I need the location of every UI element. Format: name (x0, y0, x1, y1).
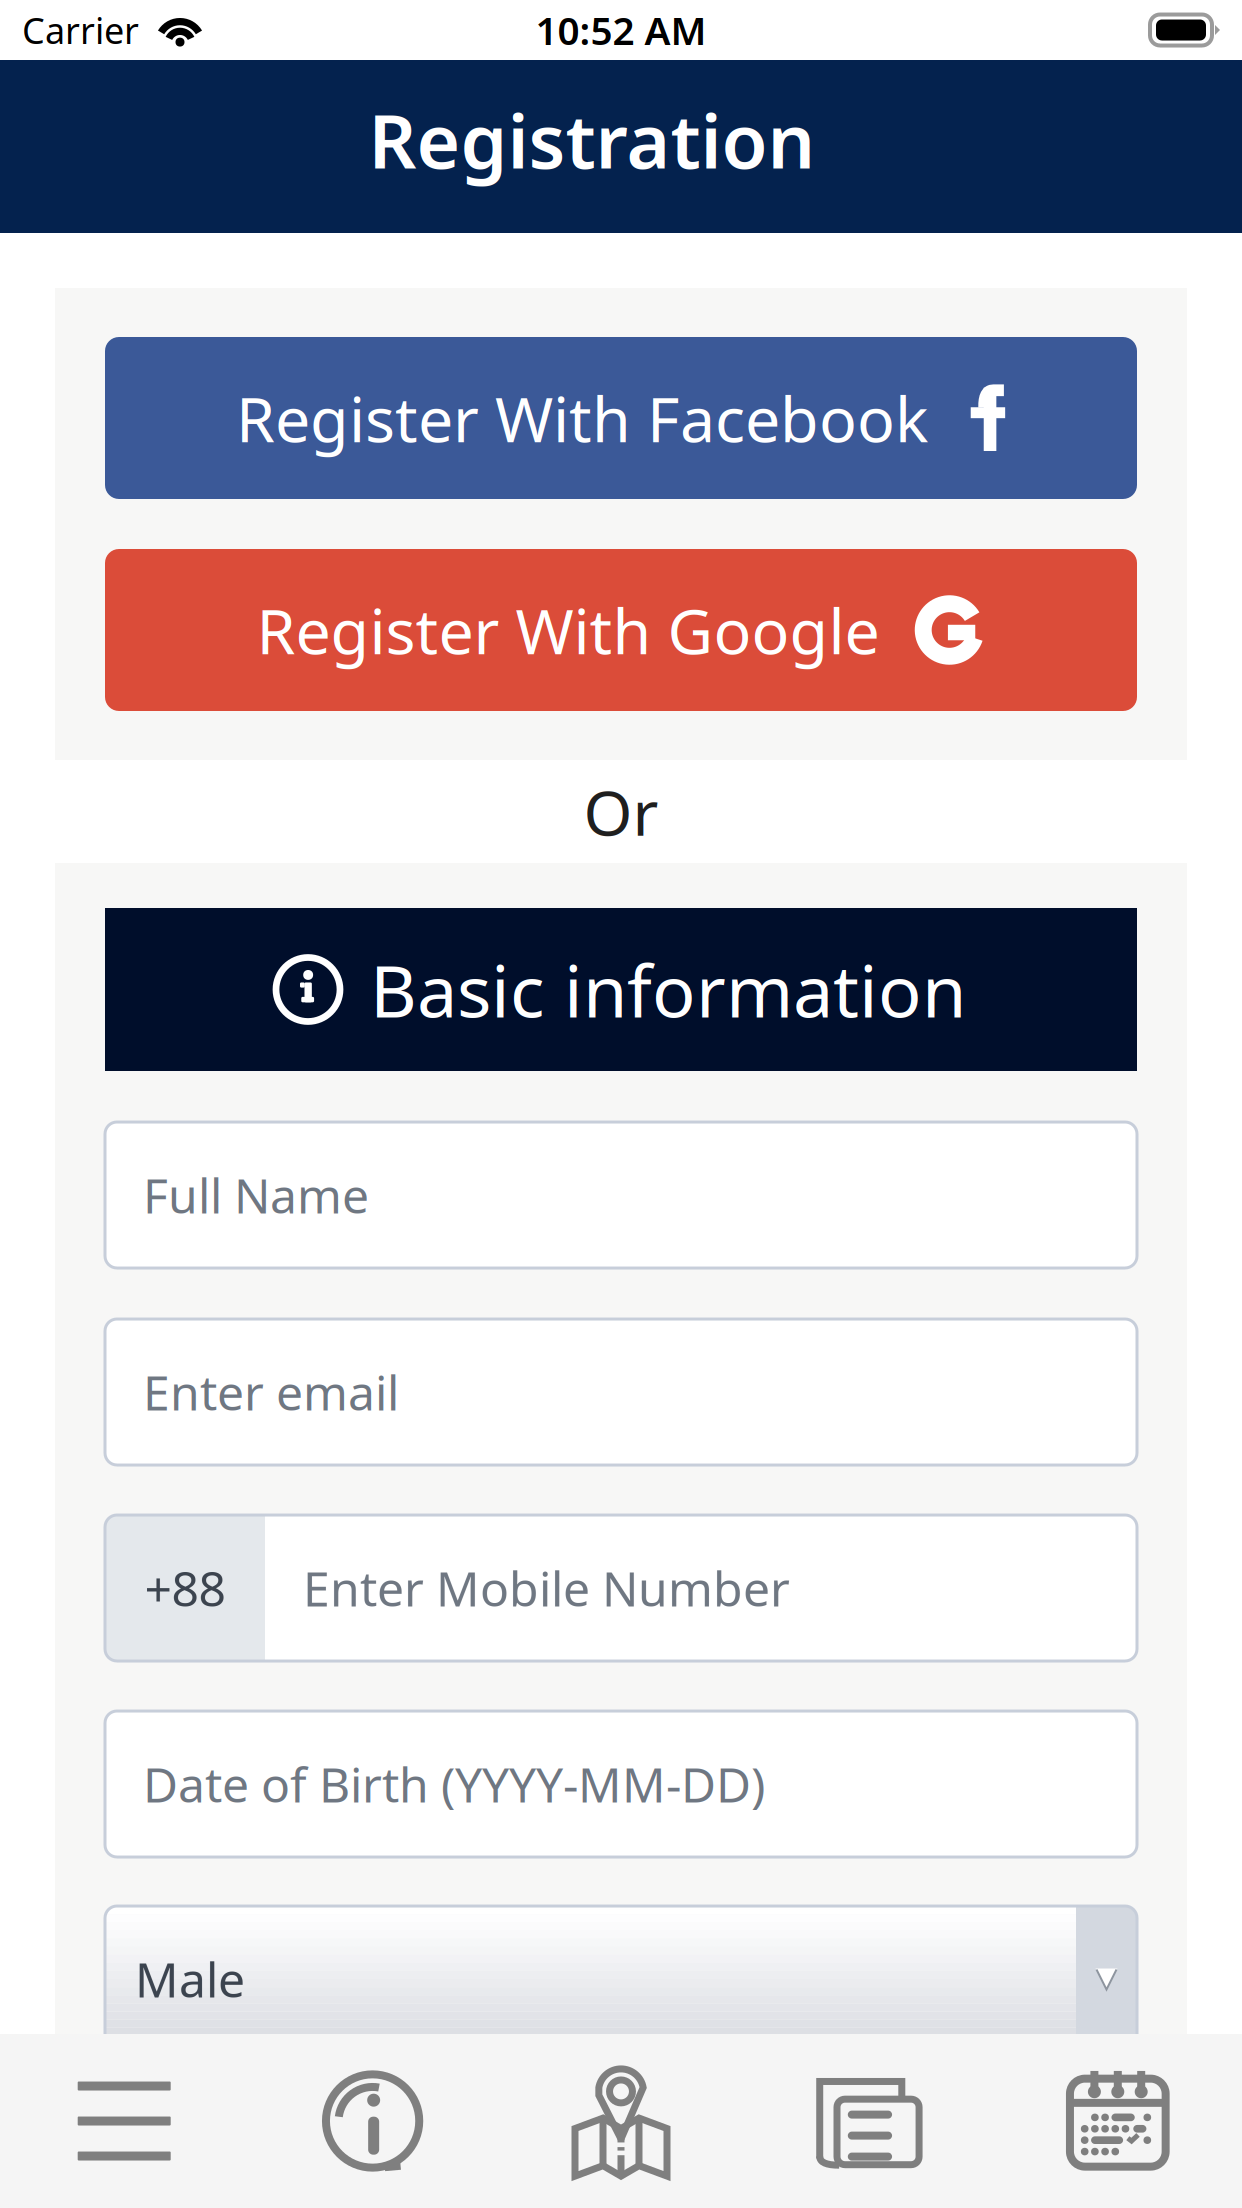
button[interactable]: Map (497, 2034, 745, 2208)
staticText: Carrier (22, 6, 139, 54)
staticText: Registration (368, 90, 815, 189)
button[interactable]: Calendar (994, 2034, 1242, 2208)
staticText: Enter Mobile Number (303, 1556, 790, 1620)
staticText: Basic information (370, 942, 966, 1037)
button[interactable]: Menu (0, 2034, 248, 2208)
button[interactable]: News (745, 2034, 994, 2208)
staticText: Or (583, 770, 658, 853)
staticText: Register With Facebook (236, 376, 928, 460)
staticText: Full Name (143, 1163, 369, 1227)
staticText: Register With Google (256, 588, 879, 672)
staticText: Date of Birth (YYYY-MM-DD) (143, 1752, 765, 1816)
button[interactable]: Information (248, 2034, 497, 2208)
button[interactable]: Register With Facebook (105, 337, 1137, 499)
staticText: 10:52 AM (535, 4, 706, 56)
staticText: Enter email (143, 1360, 399, 1424)
button[interactable]: Register With Google (105, 549, 1137, 711)
staticText: Male (135, 1947, 245, 2011)
staticText: +88 (144, 1556, 225, 1620)
